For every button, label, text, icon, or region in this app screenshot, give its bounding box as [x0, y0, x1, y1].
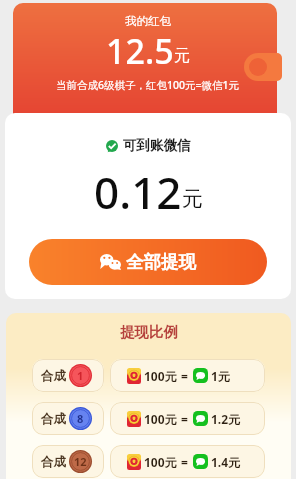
staticText: 元	[174, 46, 190, 66]
staticText: 我的红包	[125, 14, 171, 28]
staticText: =	[181, 368, 188, 384]
button[interactable]: 100元	[110, 402, 265, 435]
button[interactable]: 100元	[110, 445, 265, 478]
staticText: 1.2元	[211, 411, 241, 427]
staticText: 合成	[41, 411, 66, 427]
staticText: 可到账微信	[123, 137, 191, 154]
button[interactable]: 合成	[32, 402, 104, 435]
staticText: 8	[77, 411, 84, 426]
staticText: 100元	[144, 454, 177, 470]
staticText: 提现比例	[120, 323, 178, 341]
staticText: 合成	[41, 454, 66, 470]
staticText: 100元	[144, 411, 177, 427]
staticText: 1	[77, 368, 84, 383]
button[interactable]: 100元	[110, 359, 265, 392]
staticText: 12.5	[106, 28, 174, 74]
staticText: 0.12	[94, 162, 182, 222]
staticText: 全部提现	[126, 251, 196, 273]
button[interactable]: 全部提现	[29, 239, 267, 285]
staticText: =	[181, 411, 188, 427]
staticText: 元	[182, 186, 203, 212]
staticText: 合成	[41, 368, 66, 384]
button[interactable]: 合成	[32, 359, 104, 392]
staticText: 1.4元	[211, 454, 241, 470]
staticText: =	[181, 454, 188, 470]
staticText: 1元	[211, 368, 230, 384]
staticText: 12	[74, 454, 87, 469]
staticText: 当前合成6级棋子，红包100元=微信1元	[56, 78, 240, 92]
button[interactable]: 合成	[32, 445, 104, 478]
staticText: 100元	[144, 368, 177, 384]
